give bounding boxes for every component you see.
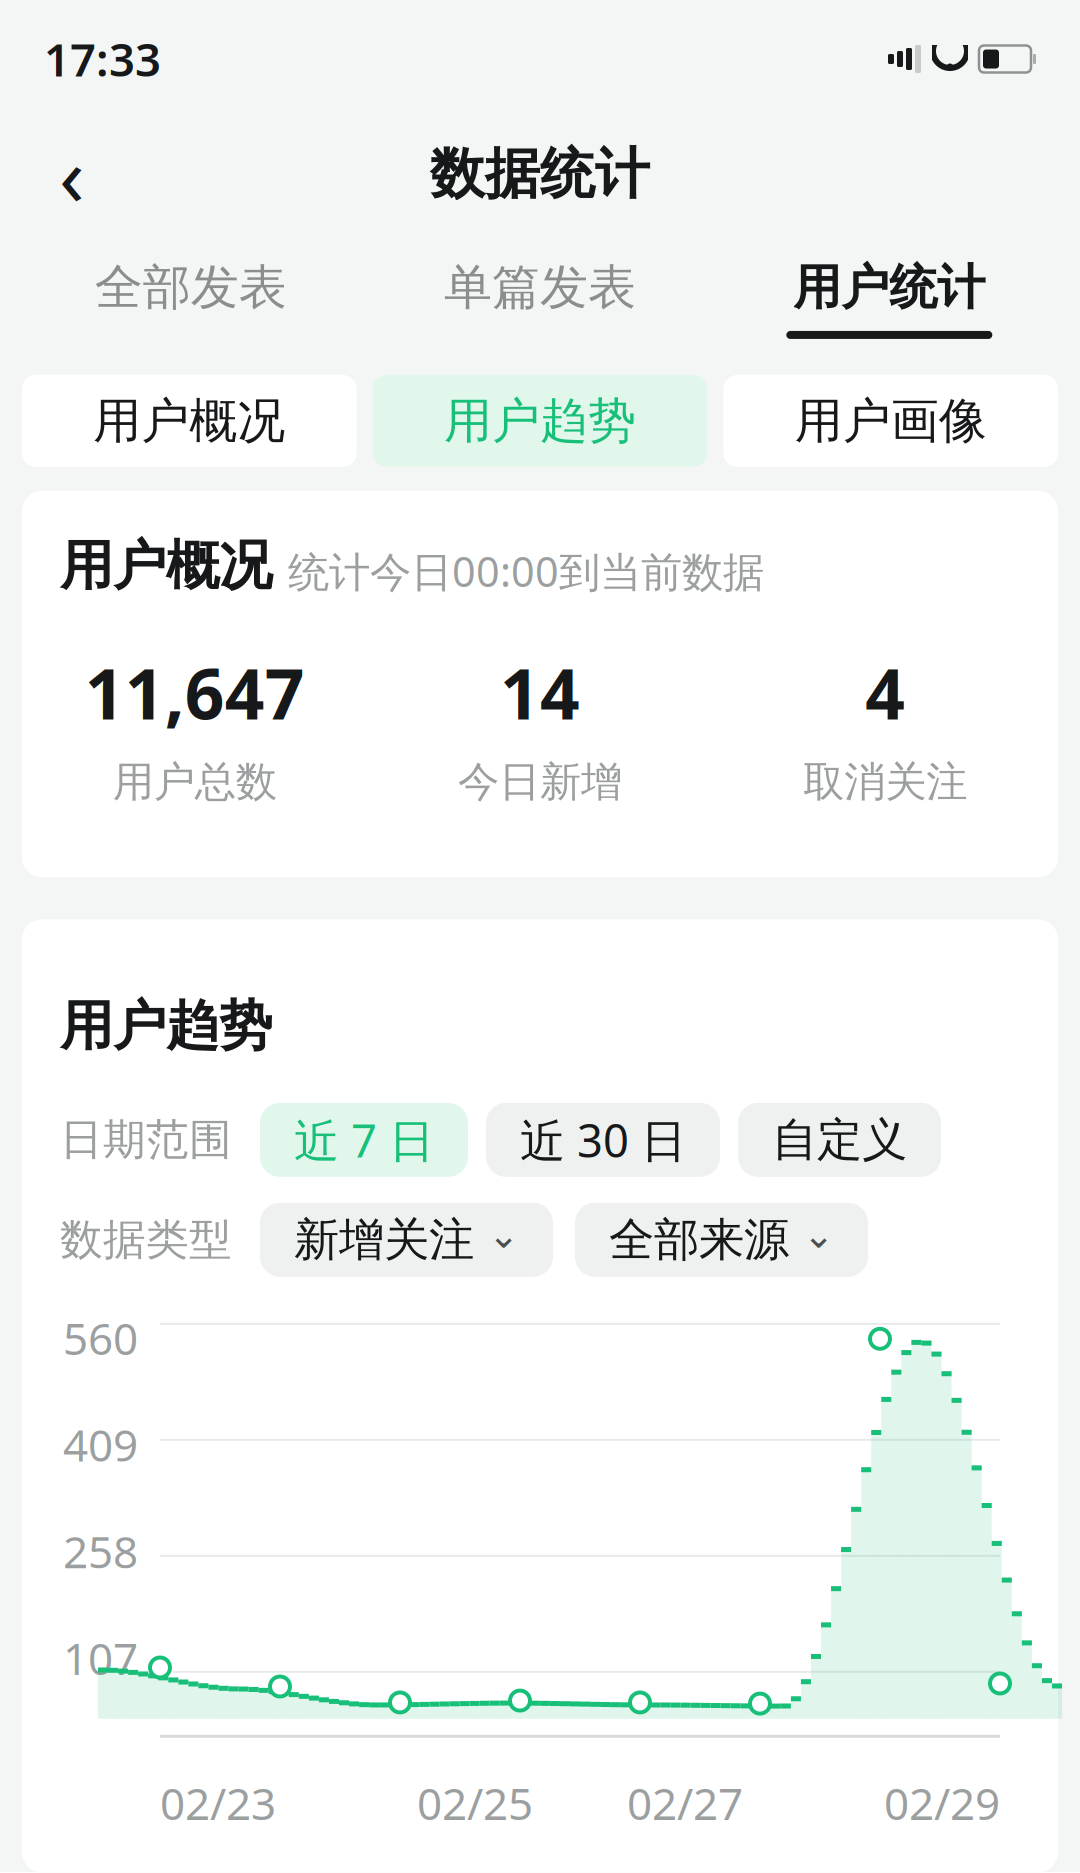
staticText: 单篇发表 xyxy=(444,258,636,317)
staticText: 用户趋势 xyxy=(60,993,272,1059)
staticText: ⌄ xyxy=(488,1214,519,1256)
staticText: 全部发表 xyxy=(95,258,287,317)
staticText: 用户趋势 xyxy=(444,391,636,450)
button[interactable]: 自定义 xyxy=(738,1103,941,1177)
button[interactable]: 用户趋势 xyxy=(373,375,707,467)
staticText: 02/25 xyxy=(417,1774,533,1832)
staticText: 统计今日00:00到当前数据 xyxy=(288,544,764,598)
button[interactable]: 全部来源 xyxy=(575,1203,868,1277)
staticText: 11,647 xyxy=(85,646,305,739)
staticText: 数据类型 xyxy=(60,1214,232,1266)
staticText: 409 xyxy=(63,1415,138,1474)
staticText: 今日新增 xyxy=(458,756,622,807)
staticText: 用户总数 xyxy=(113,756,277,807)
button[interactable]: 单篇发表 xyxy=(365,248,715,349)
staticText: 258 xyxy=(63,1522,138,1580)
staticText: ‹ xyxy=(59,119,85,229)
staticText: 17:33 xyxy=(44,29,161,89)
staticText: 用户统计 xyxy=(793,258,985,317)
staticText: 新增关注 xyxy=(294,1212,474,1268)
staticText: 自定义 xyxy=(772,1112,907,1168)
staticText: 全部来源 xyxy=(609,1212,789,1268)
staticText: 4 xyxy=(865,646,905,739)
staticText: 日期范围 xyxy=(60,1114,232,1166)
staticText: 02/29 xyxy=(884,1774,1000,1832)
button[interactable]: 近 30 日 xyxy=(486,1103,720,1177)
button[interactable]: 新增关注 xyxy=(260,1203,553,1277)
staticText: 近 30 日 xyxy=(520,1110,686,1170)
staticText: 用户概况 xyxy=(93,391,285,450)
staticText: 近 7 日 xyxy=(294,1110,434,1170)
button[interactable]: 近 7 日 xyxy=(260,1103,468,1177)
button[interactable]: 用户概况 xyxy=(22,375,357,467)
button[interactable]: 用户统计 xyxy=(715,248,1064,349)
staticText: 用户画像 xyxy=(795,391,987,450)
staticText: ⌄ xyxy=(803,1214,834,1256)
button[interactable]: 用户画像 xyxy=(723,375,1058,467)
staticText: 数据统计 xyxy=(430,140,650,207)
staticText: 取消关注 xyxy=(803,756,967,807)
staticText: 107 xyxy=(63,1629,138,1687)
button[interactable]: Back xyxy=(30,132,114,216)
staticText: 14 xyxy=(500,646,580,739)
staticText: 02/27 xyxy=(627,1774,743,1832)
button[interactable]: 全部发表 xyxy=(16,248,365,349)
staticText: 用户概况 xyxy=(60,533,272,598)
staticText: 560 xyxy=(63,1309,138,1367)
staticText: 02/23 xyxy=(160,1774,276,1832)
